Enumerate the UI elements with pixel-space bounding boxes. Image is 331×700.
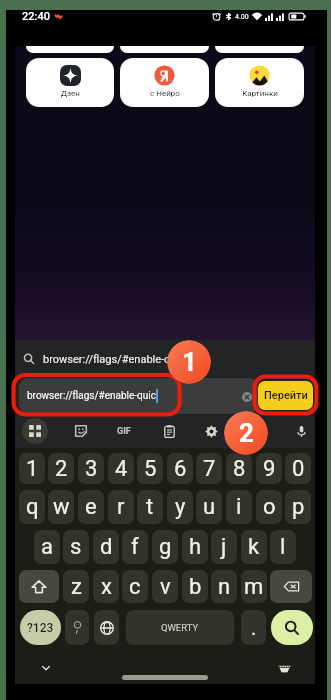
button[interactable]: GIF bbox=[107, 414, 141, 448]
button[interactable]: Emoji bbox=[65, 610, 89, 645]
staticText: browser://flags/#enable-quic bbox=[27, 390, 156, 402]
staticText: u bbox=[203, 494, 216, 520]
staticText: 9 bbox=[263, 456, 276, 482]
button[interactable]: 0 bbox=[285, 453, 311, 484]
button[interactable]: Hide keyboard bbox=[31, 653, 61, 683]
button[interactable]: 4 bbox=[108, 453, 134, 484]
staticText: 2 bbox=[239, 418, 254, 448]
button[interactable]: p bbox=[285, 490, 311, 524]
button[interactable] bbox=[120, 46, 209, 53]
button[interactable]: i bbox=[226, 490, 252, 524]
staticText: l bbox=[280, 534, 286, 560]
button[interactable]: . bbox=[241, 610, 266, 645]
button[interactable]: с Нейро bbox=[120, 58, 209, 107]
staticText: r bbox=[117, 494, 125, 520]
button[interactable]: q bbox=[19, 490, 45, 524]
button[interactable]: b bbox=[182, 570, 208, 603]
staticText: m bbox=[244, 574, 264, 600]
button[interactable]: Backspace bbox=[270, 570, 312, 603]
button[interactable]: e bbox=[78, 490, 104, 524]
staticText: 5 bbox=[144, 456, 157, 482]
button[interactable]: 6 bbox=[167, 453, 193, 484]
button[interactable]: f bbox=[122, 530, 148, 564]
button[interactable]: QWERTY bbox=[126, 610, 234, 645]
staticText: 1 bbox=[182, 347, 197, 377]
button[interactable]: w bbox=[48, 490, 74, 524]
staticText: QWERTY bbox=[161, 622, 199, 633]
staticText: t bbox=[146, 494, 154, 520]
button[interactable]: a bbox=[34, 530, 60, 564]
button[interactable]: Voice input bbox=[284, 414, 318, 448]
button[interactable] bbox=[215, 46, 304, 53]
button[interactable]: g bbox=[152, 530, 178, 564]
staticText: q bbox=[26, 494, 39, 520]
button[interactable]: Clear bbox=[238, 388, 255, 405]
button[interactable]: y bbox=[167, 490, 193, 524]
button[interactable]: 2 bbox=[48, 453, 74, 484]
button[interactable]: browser://flags/#enable-q bbox=[15, 340, 315, 378]
staticText: 2 bbox=[55, 456, 68, 482]
staticText: d bbox=[100, 534, 113, 560]
button[interactable]: 7 bbox=[196, 453, 222, 484]
button[interactable]: Search bbox=[271, 610, 313, 645]
button[interactable]: Settings bbox=[194, 414, 228, 448]
button[interactable]: n bbox=[211, 570, 237, 603]
button[interactable]: j bbox=[211, 530, 237, 564]
staticText: 0 bbox=[292, 456, 305, 482]
button[interactable]: Clipboard bbox=[152, 414, 186, 448]
button[interactable]: k bbox=[241, 530, 267, 564]
staticText: w bbox=[53, 494, 70, 520]
button[interactable]: d bbox=[93, 530, 119, 564]
staticText: 7 bbox=[203, 456, 216, 482]
staticText: ?123 bbox=[27, 621, 54, 635]
button[interactable]: Дзен bbox=[26, 58, 114, 107]
staticText: g bbox=[159, 534, 172, 560]
staticText: browser://flags/#enable-q bbox=[43, 353, 171, 366]
button[interactable]: Switch keyboard bbox=[269, 653, 299, 683]
staticText: b bbox=[189, 574, 202, 600]
button[interactable]: ?123 bbox=[20, 610, 61, 645]
staticText: 3 bbox=[85, 456, 98, 482]
staticText: y bbox=[175, 494, 186, 520]
staticText: 22:40 bbox=[22, 10, 50, 23]
button[interactable]: s bbox=[63, 530, 89, 564]
staticText: 8 bbox=[233, 456, 246, 482]
button[interactable]: t bbox=[137, 490, 163, 524]
button[interactable]: m bbox=[241, 570, 267, 603]
button[interactable]: z bbox=[63, 570, 89, 603]
button[interactable]: c bbox=[122, 570, 148, 603]
button[interactable]: Перейти bbox=[258, 381, 313, 410]
button[interactable]: 5 bbox=[137, 453, 163, 484]
staticText: z bbox=[71, 574, 82, 600]
staticText: k bbox=[248, 534, 260, 560]
button[interactable]: Картинки bbox=[215, 58, 304, 107]
staticText: i bbox=[236, 494, 242, 520]
staticText: Дзен bbox=[61, 89, 80, 98]
button[interactable]: u bbox=[196, 490, 222, 524]
button[interactable]: Language bbox=[94, 610, 119, 645]
staticText: h bbox=[189, 534, 202, 560]
button[interactable]: v bbox=[152, 570, 178, 603]
button[interactable]: Shift bbox=[19, 570, 59, 603]
button[interactable]: 1 bbox=[19, 453, 45, 484]
staticText: Картинки bbox=[242, 89, 278, 98]
button[interactable] bbox=[26, 46, 114, 53]
staticText: . bbox=[251, 616, 257, 639]
staticText: f bbox=[131, 534, 139, 560]
button[interactable]: 8 bbox=[226, 453, 252, 484]
staticText: с Нейро bbox=[150, 89, 180, 98]
staticText: v bbox=[160, 574, 171, 600]
button[interactable]: browser://flags/#enable-quic bbox=[19, 378, 258, 414]
staticText: c bbox=[129, 574, 141, 600]
staticText: 1 bbox=[26, 456, 39, 482]
button[interactable]: 9 bbox=[256, 453, 282, 484]
button[interactable]: x bbox=[93, 570, 119, 603]
button[interactable]: l bbox=[270, 530, 296, 564]
button[interactable]: h bbox=[182, 530, 208, 564]
button[interactable]: Apps bbox=[18, 414, 52, 448]
button[interactable]: Stickers bbox=[64, 414, 98, 448]
button[interactable]: 3 bbox=[78, 453, 104, 484]
button[interactable]: o bbox=[256, 490, 282, 524]
button[interactable]: r bbox=[108, 490, 134, 524]
staticText: o bbox=[263, 494, 276, 520]
